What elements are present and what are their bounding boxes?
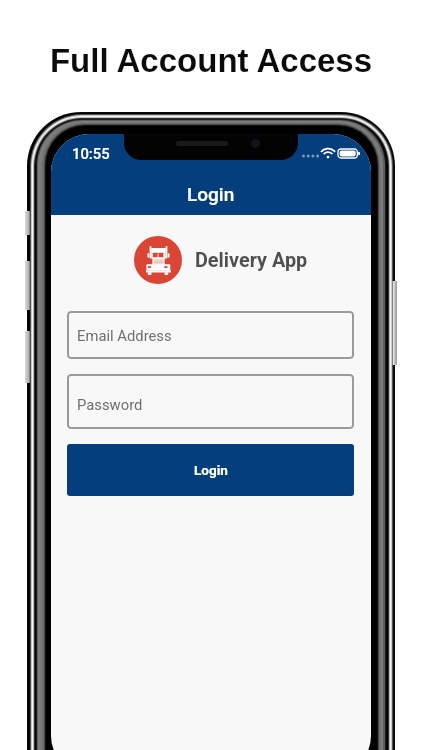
button[interactable]: Login <box>67 444 354 496</box>
staticText: Delivery App <box>195 249 308 272</box>
staticText: Login <box>187 183 235 205</box>
staticText: Password <box>77 396 143 413</box>
staticText: 10:55 <box>72 145 110 162</box>
staticText: Email Address <box>77 327 172 344</box>
button[interactable]: Password <box>67 374 354 429</box>
staticText: Login <box>194 462 228 478</box>
button[interactable]: Email Address <box>67 311 354 359</box>
staticText: Full Account Access <box>0 42 422 79</box>
button[interactable]: Delivery App <box>134 236 308 284</box>
